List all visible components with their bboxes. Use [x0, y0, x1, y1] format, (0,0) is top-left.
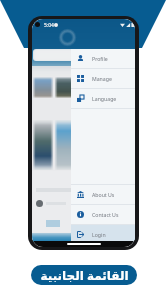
staticText: القائمة الجانبية — [40, 267, 129, 283]
button[interactable]: Manage — [71, 69, 135, 88]
button[interactable]: Profile — [71, 49, 135, 68]
staticText: Contact Us — [92, 211, 119, 218]
button[interactable]: القائمة الجانبية — [31, 265, 137, 285]
button[interactable]: Contact Us — [71, 205, 135, 224]
staticText: 5:04 — [44, 22, 54, 29]
staticText: Manage — [92, 75, 112, 82]
button[interactable]: About Us — [71, 185, 135, 204]
button[interactable]: Language — [71, 89, 135, 108]
staticText: Login — [92, 231, 106, 238]
staticText: About Us — [92, 191, 115, 198]
staticText: Profile — [92, 55, 108, 62]
staticText: Language — [92, 95, 117, 102]
button[interactable]: Login — [71, 225, 135, 244]
